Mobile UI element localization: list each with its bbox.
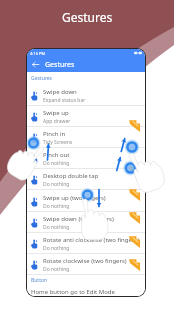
staticText: Button xyxy=(31,277,48,284)
staticText: Desktop double tap xyxy=(43,172,99,180)
button[interactable]: Rotate clockwise (two fingers) xyxy=(27,254,145,275)
button[interactable]: Pinch in xyxy=(27,127,145,148)
staticText: Rotate clockwise (two fingers) xyxy=(43,257,127,265)
staticText: 4:16 PM xyxy=(30,51,46,56)
button[interactable]: Swipe up (two fingers) xyxy=(27,191,145,212)
button[interactable]: Swipe up xyxy=(27,106,145,127)
button[interactable]: Desktop double tap xyxy=(27,169,145,190)
staticText: Gestures xyxy=(45,60,75,70)
staticText: Do nothing xyxy=(43,245,70,252)
staticText: Do nothing xyxy=(43,266,70,273)
staticText: Swipe up (two fingers) xyxy=(43,194,106,202)
button[interactable]: Home button go to Edit Mode xyxy=(27,286,145,296)
staticText: Do nothing xyxy=(43,203,70,210)
staticText: Tidy Screens xyxy=(43,139,73,146)
button[interactable]: Back xyxy=(31,60,40,69)
button[interactable]: Back xyxy=(31,57,145,72)
staticText: Gestures xyxy=(31,75,52,82)
staticText: Pinch in xyxy=(43,130,66,138)
staticText: Swipe up xyxy=(43,109,69,117)
staticText: Do nothing xyxy=(43,181,70,188)
staticText: Swipe down xyxy=(43,88,77,96)
staticText: Rotate anti clockwise (two fingers) xyxy=(43,236,139,244)
button[interactable]: Rotate anti clockwise (two fingers) xyxy=(27,233,145,254)
staticText: Gestures xyxy=(62,9,113,25)
button[interactable]: Swipe down (two fingers) xyxy=(27,212,145,233)
staticText: Swipe down (two fingers) xyxy=(43,215,114,223)
staticText: Pinch out xyxy=(43,151,70,159)
staticText: App drawer xyxy=(43,118,71,125)
button[interactable]: Pinch out xyxy=(27,148,145,169)
staticText: Do nothing xyxy=(43,224,70,231)
staticText: Expand status bar xyxy=(43,97,86,104)
staticText: Do nothing xyxy=(43,160,70,167)
staticText: Home button go to Edit Mode xyxy=(31,288,115,296)
button[interactable]: Swipe down xyxy=(27,85,145,106)
